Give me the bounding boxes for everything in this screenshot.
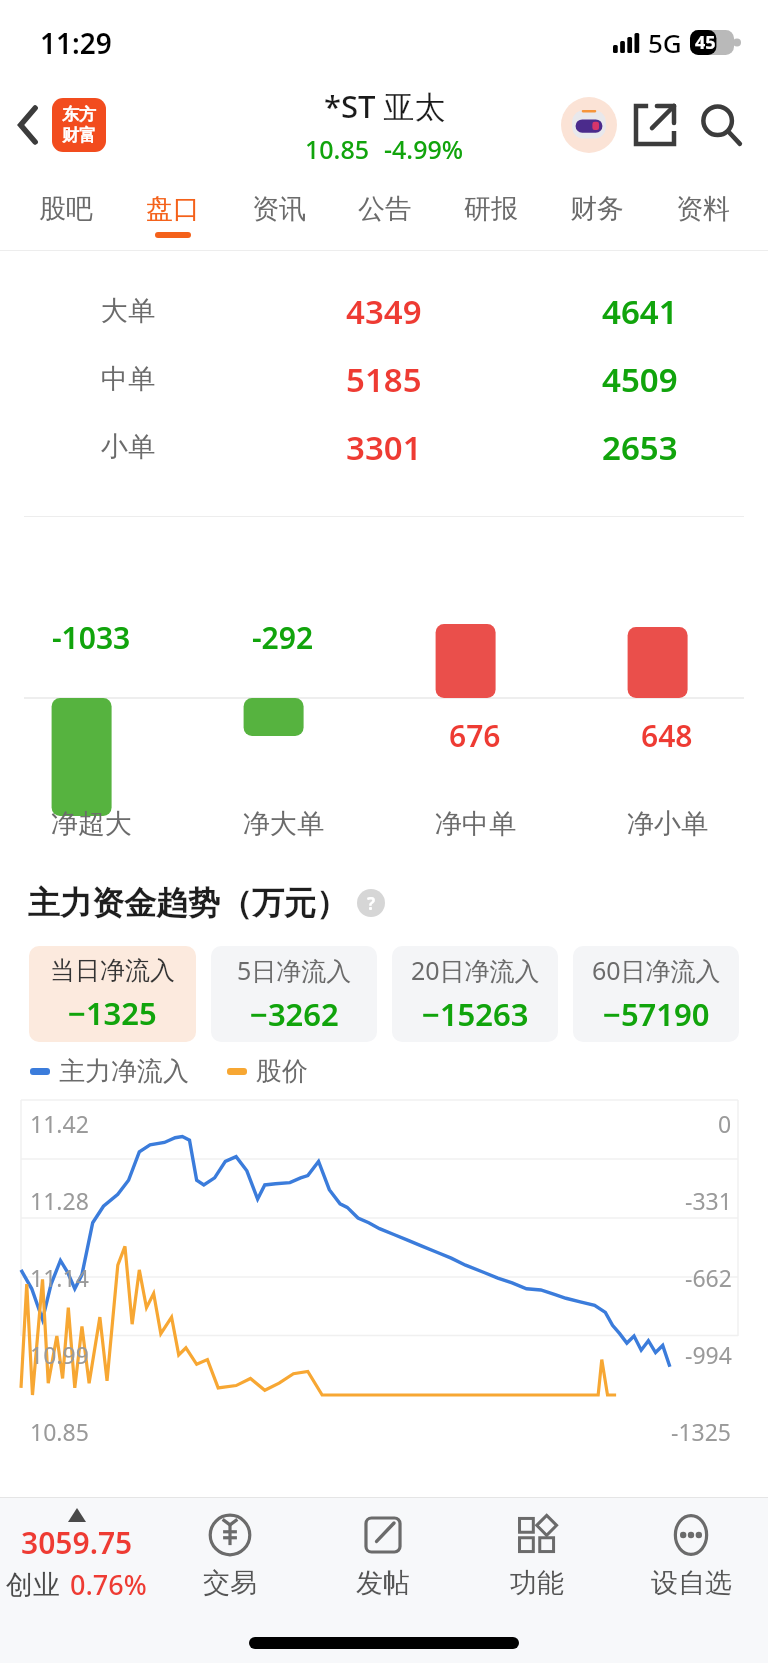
staticText: 10.99 <box>30 1339 89 1370</box>
staticText: 0 <box>718 1108 732 1139</box>
button[interactable]: 5日净流入 <box>211 946 377 1042</box>
staticText: 676 <box>449 715 501 756</box>
staticText: 5G <box>648 25 682 60</box>
staticText: −57190 <box>603 993 710 1035</box>
staticText: 公告 <box>358 192 412 226</box>
button[interactable]: 设自选 <box>614 1498 768 1613</box>
staticText: 5185 <box>346 357 422 402</box>
button[interactable]: 研报 <box>438 168 544 250</box>
button[interactable]: 功能 <box>460 1498 614 1613</box>
staticText: 大单 <box>101 294 155 328</box>
staticText: 小单 <box>101 430 155 464</box>
button[interactable]: 交易 <box>153 1498 306 1613</box>
staticText: 4349 <box>346 289 422 334</box>
button[interactable]: AI助手 <box>556 92 622 158</box>
staticText: 财务 <box>570 192 624 226</box>
staticText: -994 <box>685 1339 732 1370</box>
staticText: 11.28 <box>30 1185 89 1216</box>
staticText: −1325 <box>68 992 157 1034</box>
staticText: -331 <box>685 1185 732 1216</box>
staticText: 股价 <box>256 1055 308 1088</box>
button[interactable]: 盘口 <box>119 168 226 250</box>
staticText: 60日净流入 <box>592 953 721 987</box>
button[interactable]: 财务 <box>544 168 650 250</box>
staticText: 研报 <box>464 192 518 226</box>
staticText: 4509 <box>602 357 678 402</box>
button[interactable]: Back <box>0 88 58 162</box>
staticText: -1033 <box>52 617 131 658</box>
staticText: -292 <box>252 617 314 658</box>
button[interactable]: 发帖 <box>306 1498 460 1613</box>
staticText: 45 <box>695 30 716 55</box>
staticText: −15263 <box>422 993 529 1035</box>
staticText: 发帖 <box>356 1566 410 1600</box>
staticText: 11:29 <box>40 24 112 62</box>
button[interactable]: Search <box>688 92 754 158</box>
staticText: 股吧 <box>39 192 93 226</box>
staticText: -1325 <box>671 1416 732 1447</box>
staticText: 当日净流入 <box>50 955 175 986</box>
staticText: 创业 <box>6 1568 60 1602</box>
staticText: *ST 亚太 <box>324 85 446 127</box>
button[interactable]: 东方财富 <box>52 98 106 152</box>
staticText: 5日净流入 <box>237 953 352 987</box>
staticText: 盘口 <box>146 192 200 226</box>
staticText: 资讯 <box>252 192 306 226</box>
button[interactable]: 60日净流入 <box>573 946 739 1042</box>
staticText: 3301 <box>346 425 422 470</box>
staticText: −3262 <box>250 993 339 1035</box>
staticText: 10.85 <box>30 1416 89 1447</box>
button[interactable]: 资料 <box>650 168 756 250</box>
staticText: 中单 <box>101 362 155 396</box>
staticText: 2653 <box>602 425 678 470</box>
staticText: 交易 <box>203 1566 257 1600</box>
staticText: 净中单 <box>435 807 516 841</box>
staticText: ? <box>367 892 376 915</box>
staticText: 功能 <box>510 1566 564 1600</box>
staticText: 20日净流入 <box>411 953 540 987</box>
button[interactable]: 资讯 <box>226 168 332 250</box>
staticText: 净超大 <box>51 807 132 841</box>
staticText: 净大单 <box>243 807 324 841</box>
staticText: -662 <box>685 1262 732 1293</box>
button[interactable]: Help <box>356 888 386 918</box>
staticText: 4641 <box>602 289 678 334</box>
staticText: 设自选 <box>651 1566 732 1600</box>
staticText: 财富 <box>62 125 96 146</box>
staticText: 11.14 <box>30 1262 89 1293</box>
staticText: 3059.75 <box>21 1522 133 1563</box>
staticText: 资料 <box>676 192 730 226</box>
staticText: -4.99% <box>384 132 464 166</box>
staticText: 11.42 <box>30 1108 89 1139</box>
button[interactable]: 20日净流入 <box>392 946 558 1042</box>
staticText: 主力资金趋势（万元） <box>28 883 348 923</box>
staticText: 东方 <box>62 104 96 125</box>
button[interactable]: 公告 <box>332 168 438 250</box>
staticText: 10.85 <box>305 132 370 166</box>
staticText: 主力净流入 <box>59 1055 189 1088</box>
button[interactable]: 当日净流入 <box>29 946 196 1042</box>
button[interactable]: Share <box>622 92 688 158</box>
staticText: 净小单 <box>627 807 708 841</box>
button[interactable]: 股吧 <box>12 168 119 250</box>
button[interactable]: 3059.75 <box>0 1498 153 1613</box>
staticText: 648 <box>641 715 693 756</box>
staticText: 0.76% <box>70 1566 147 1603</box>
